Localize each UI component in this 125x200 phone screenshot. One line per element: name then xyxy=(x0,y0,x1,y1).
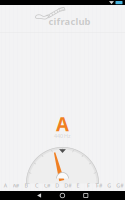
staticText: 440 Hz xyxy=(54,132,71,140)
button[interactable]: Back xyxy=(37,193,41,198)
button[interactable]: G# xyxy=(115,181,125,189)
staticText: B xyxy=(24,182,27,189)
staticText: C xyxy=(35,182,38,189)
button[interactable]: D xyxy=(52,181,62,189)
staticText: A# xyxy=(13,182,19,189)
button[interactable]: F# xyxy=(94,181,104,189)
staticText: F# xyxy=(96,182,102,189)
button[interactable]: B xyxy=(21,181,31,189)
button[interactable]: A xyxy=(0,181,10,189)
button[interactable]: E xyxy=(73,181,83,189)
staticText: D# xyxy=(64,182,71,189)
staticText: C# xyxy=(44,182,50,189)
button[interactable]: F xyxy=(83,181,94,189)
staticText: cifraclub xyxy=(48,15,90,27)
staticText: E xyxy=(77,182,80,189)
staticText: G# xyxy=(116,182,123,189)
button[interactable]: D# xyxy=(62,181,73,189)
button[interactable]: G xyxy=(104,181,115,189)
staticText: F xyxy=(87,182,90,189)
staticText: D xyxy=(55,182,59,189)
button[interactable]: C# xyxy=(42,181,52,189)
staticText: A xyxy=(4,182,7,189)
button[interactable]: Home xyxy=(60,193,65,198)
button[interactable]: C xyxy=(31,181,42,189)
staticText: G xyxy=(107,182,111,189)
button[interactable]: Recents xyxy=(84,193,88,198)
button[interactable]: A# xyxy=(10,181,21,189)
button[interactable]: Cifra Club xyxy=(0,0,125,32)
staticText: A xyxy=(56,112,69,136)
